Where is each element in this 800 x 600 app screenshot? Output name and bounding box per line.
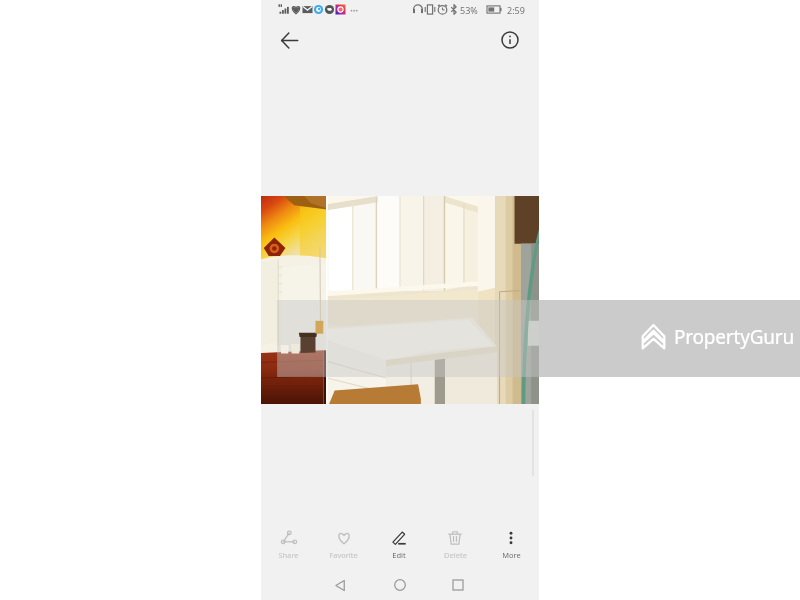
button[interactable]: Back xyxy=(269,20,309,60)
button[interactable]: More xyxy=(483,520,539,560)
staticText: Delete xyxy=(444,550,467,560)
button[interactable]: Home xyxy=(385,570,415,600)
button[interactable]: Info xyxy=(490,20,530,60)
button[interactable]: Delete xyxy=(427,520,483,560)
button[interactable]: Share xyxy=(261,520,316,560)
staticText: Edit xyxy=(392,550,406,560)
staticText: 53% xyxy=(460,4,478,16)
button[interactable]: Recent apps xyxy=(443,570,473,600)
staticText: Favorite xyxy=(329,550,358,560)
staticText: More xyxy=(502,550,521,560)
staticText: PropertyGuru xyxy=(674,324,795,350)
button[interactable]: Edit xyxy=(371,520,427,560)
staticText: Share xyxy=(278,550,299,560)
button[interactable]: Back xyxy=(325,570,355,600)
button[interactable]: Favorite xyxy=(316,520,371,560)
staticText: 2:59 xyxy=(507,4,525,16)
